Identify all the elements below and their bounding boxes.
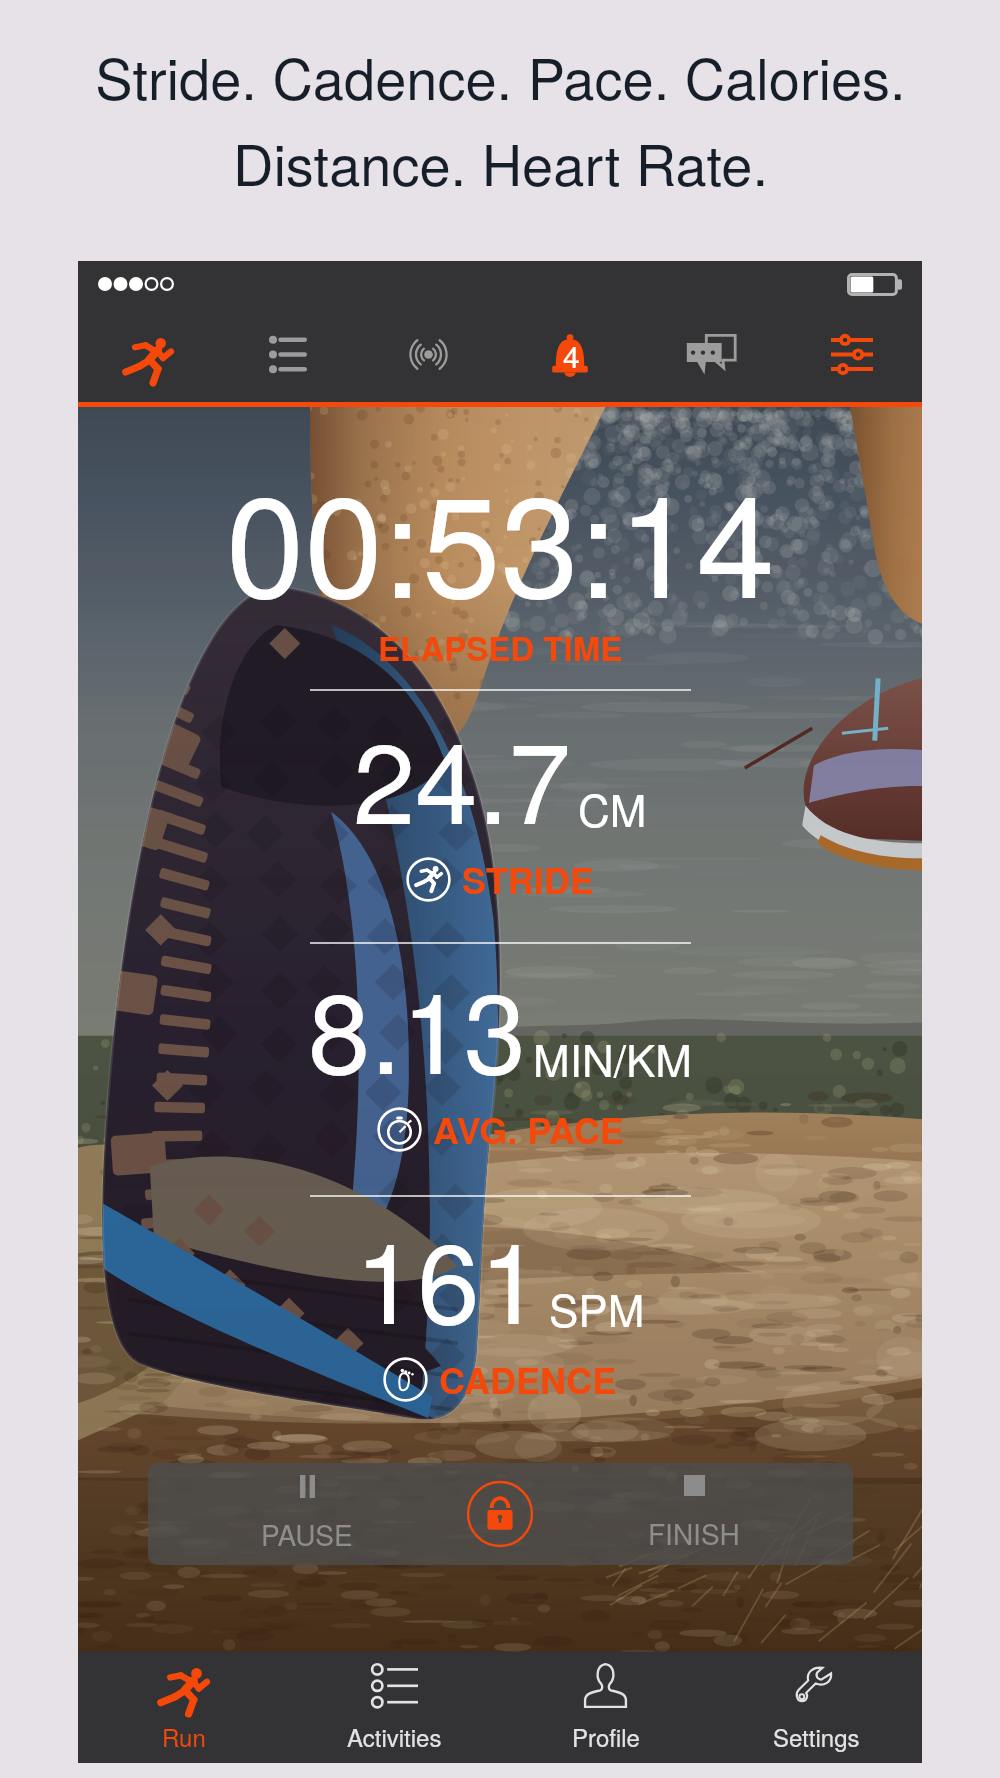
button[interactable]: Settings: [781, 307, 922, 402]
staticText: FINISH: [648, 1513, 740, 1553]
staticText: 8.13: [308, 945, 526, 1105]
staticText: 24.7: [353, 695, 571, 855]
button[interactable]: Activities: [218, 307, 358, 402]
staticText: AVG. PACE: [433, 1103, 624, 1155]
staticText: ELAPSED TIME: [378, 624, 623, 671]
staticText: Profile: [572, 1719, 640, 1753]
button[interactable]: Live tracking: [358, 307, 499, 402]
button[interactable]: Activities: [289, 1652, 500, 1763]
staticText: Settings: [773, 1719, 860, 1753]
button[interactable]: PAUSE: [148, 1463, 466, 1565]
staticText: Run: [162, 1719, 206, 1753]
button[interactable]: Lock screen: [466, 1480, 534, 1548]
staticText: PAUSE: [261, 1514, 353, 1554]
staticText: Activities: [347, 1719, 442, 1753]
button[interactable]: Messages: [640, 307, 781, 402]
staticText: STRIDE: [462, 853, 594, 905]
staticText: SPM: [549, 1276, 645, 1339]
staticText: 161: [355, 1195, 542, 1355]
staticText: Stride. Cadence. Pace. Calories. Distanc…: [95, 36, 906, 202]
button[interactable]: Run: [78, 307, 218, 402]
staticText: 00:53:14: [226, 436, 775, 638]
staticText: CM: [578, 776, 647, 839]
staticText: 4: [563, 334, 580, 377]
button[interactable]: FINISH: [534, 1463, 853, 1565]
button[interactable]: Settings: [711, 1652, 922, 1763]
staticText: MIN/KM: [533, 1026, 692, 1089]
button[interactable]: Notifications: [499, 307, 640, 402]
staticText: CADENCE: [439, 1353, 617, 1405]
button[interactable]: Profile: [500, 1652, 711, 1763]
button[interactable]: Run: [78, 1652, 289, 1763]
